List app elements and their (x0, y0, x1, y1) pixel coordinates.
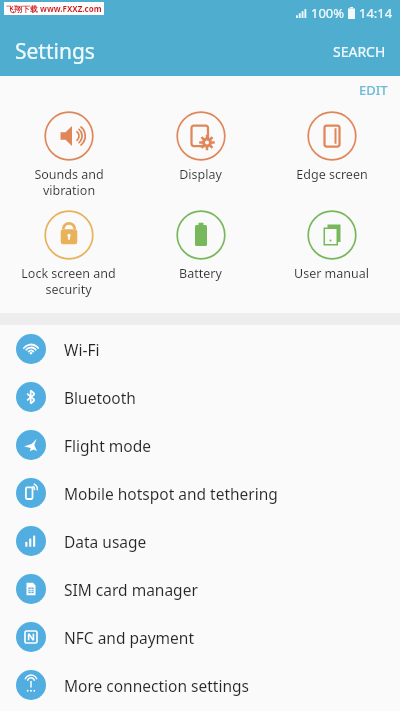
staticText: More connection settings (64, 675, 249, 696)
staticText: 14:14 (359, 4, 393, 22)
other: More connection settings (16, 670, 46, 700)
staticText: 100% (311, 4, 345, 22)
button[interactable]: EDIT (347, 76, 400, 104)
staticText: SEARCH (333, 42, 386, 61)
staticText: Flight mode (64, 435, 151, 456)
other: Bluetooth (16, 382, 46, 412)
staticText: 飞翔下载 www.FXXZ.com (6, 3, 102, 14)
staticText: SIM card manager (64, 579, 198, 600)
other: NFC and payment (16, 622, 46, 652)
button[interactable]: SIM card manager (0, 565, 400, 613)
button[interactable]: NFC and payment (0, 613, 400, 661)
other: Data usage (16, 526, 46, 556)
button[interactable]: Sounds and vibration (6, 109, 131, 200)
staticText: Battery (179, 265, 222, 282)
staticText: Lock screen and security (21, 265, 116, 297)
button[interactable]: Battery (138, 208, 263, 284)
other: Mobile hotspot and tethering (16, 478, 46, 508)
button[interactable]: SEARCH (319, 29, 400, 74)
button[interactable]: Flight mode (0, 421, 400, 469)
staticText: EDIT (359, 81, 388, 99)
button[interactable]: Wi-Fi (0, 325, 400, 373)
button[interactable]: Data usage (0, 517, 400, 565)
other: SIM card manager (16, 574, 46, 604)
button[interactable]: Mobile hotspot and tethering (0, 469, 400, 517)
button[interactable]: Display (138, 109, 263, 185)
button[interactable]: Edge screen (269, 109, 394, 185)
staticText: Sounds and vibration (34, 166, 104, 198)
staticText: User manual (294, 265, 369, 282)
staticText: Wi-Fi (64, 339, 100, 360)
other: Flight mode (16, 430, 46, 460)
other: Wi-Fi (16, 334, 46, 364)
staticText: Settings (15, 37, 95, 66)
staticText: Data usage (64, 531, 147, 552)
button[interactable]: User manual (269, 208, 394, 284)
button[interactable]: More connection settings (0, 661, 400, 709)
staticText: Mobile hotspot and tethering (64, 483, 278, 504)
staticText: NFC and payment (64, 627, 195, 648)
button[interactable]: Lock screen and security (6, 208, 131, 299)
staticText: Display (179, 166, 222, 183)
staticText: Edge screen (296, 166, 368, 183)
staticText: Bluetooth (64, 387, 136, 408)
button[interactable]: Bluetooth (0, 373, 400, 421)
